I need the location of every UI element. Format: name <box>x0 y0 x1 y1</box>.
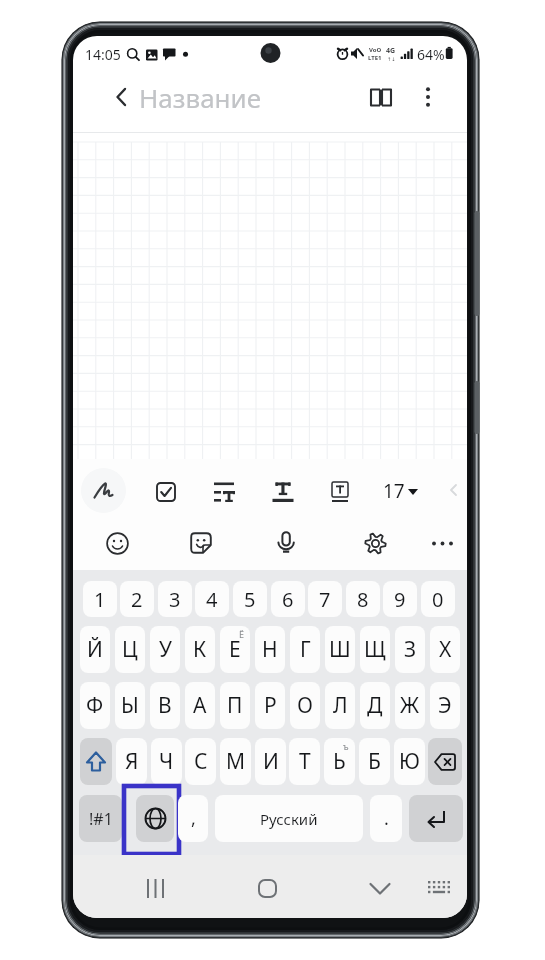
staticText: Название <box>139 80 262 115</box>
button[interactable]: Ю <box>394 738 425 785</box>
button[interactable]: Ь <box>324 738 355 785</box>
button[interactable]: Р <box>255 682 285 729</box>
button[interactable]: Reading mode <box>361 77 401 117</box>
button[interactable]: П <box>220 682 250 729</box>
button[interactable]: Paragraph style <box>203 471 245 513</box>
button[interactable]: Home <box>247 868 287 908</box>
button[interactable]: 0 <box>421 581 455 617</box>
staticText: В <box>158 691 172 720</box>
button[interactable]: Emoji <box>97 523 137 563</box>
button[interactable]: Previous <box>441 477 467 503</box>
button[interactable]: Русский <box>215 795 363 842</box>
button[interactable]: Settings <box>355 523 395 563</box>
button[interactable]: С <box>185 738 216 785</box>
button[interactable]: О <box>290 682 320 729</box>
button[interactable]: Back <box>102 77 142 117</box>
button[interactable]: Х <box>430 626 460 673</box>
button[interactable]: 7 <box>308 581 342 617</box>
button[interactable]: Г <box>290 626 320 673</box>
button[interactable]: З <box>395 626 425 673</box>
staticText: LTE1 <box>368 54 382 62</box>
staticText: 7 <box>319 586 331 613</box>
button[interactable]: И <box>255 738 286 785</box>
button[interactable]: 4 <box>195 581 229 617</box>
button[interactable]: Text box <box>319 471 361 513</box>
staticText: О <box>297 691 313 720</box>
staticText: 4G <box>386 46 396 56</box>
button[interactable]: Д <box>360 682 390 729</box>
staticText: Г <box>300 635 311 664</box>
button[interactable]: Ф <box>80 682 110 729</box>
staticText: , <box>191 806 196 831</box>
button[interactable]: К <box>185 626 215 673</box>
button[interactable]: Switch keyboard <box>419 868 459 908</box>
staticText: С <box>194 747 208 776</box>
staticText: 14:05 <box>85 45 121 64</box>
staticText: Ч <box>159 747 174 776</box>
button[interactable]: А <box>185 682 215 729</box>
button[interactable]: Enter <box>409 795 463 842</box>
staticText: ↑↓ <box>387 56 396 62</box>
button[interactable]: Recents <box>135 868 175 908</box>
staticText: 5 <box>244 586 256 613</box>
staticText: И <box>263 747 279 776</box>
staticText: Ж <box>400 691 420 720</box>
button[interactable]: Checklist <box>145 471 187 513</box>
button[interactable]: 1 <box>83 581 117 617</box>
button[interactable]: Ы <box>115 682 145 729</box>
staticText: !#1 <box>89 808 113 830</box>
staticText: К <box>193 635 207 664</box>
button[interactable]: Backspace <box>428 738 462 785</box>
button[interactable]: Е <box>220 626 250 673</box>
button[interactable]: М <box>220 738 251 785</box>
button[interactable]: Я <box>116 738 147 785</box>
button[interactable]: More <box>422 523 462 563</box>
button[interactable]: 6 <box>271 581 305 617</box>
staticText: Ф <box>86 691 104 720</box>
button[interactable]: Change language <box>136 795 174 842</box>
button[interactable]: У <box>150 626 180 673</box>
button[interactable]: Ц <box>115 626 145 673</box>
staticText: Д <box>367 691 383 720</box>
staticText: Е <box>229 635 241 664</box>
button[interactable]: Text style <box>262 471 304 513</box>
button[interactable]: Э <box>430 682 460 729</box>
button[interactable]: More options <box>408 77 448 117</box>
staticText: З <box>404 635 417 664</box>
button[interactable]: Stickers <box>181 523 221 563</box>
staticText: ъ <box>343 740 349 752</box>
staticText: Б <box>368 747 381 776</box>
button[interactable]: Ч <box>151 738 182 785</box>
button[interactable]: Ж <box>395 682 425 729</box>
button[interactable]: 5 <box>233 581 267 617</box>
staticText: 6 <box>282 586 294 613</box>
button[interactable]: . <box>370 795 402 842</box>
button[interactable]: Л <box>325 682 355 729</box>
staticText: 17 <box>383 478 405 504</box>
staticText: Я <box>125 747 139 776</box>
button[interactable]: Hide keyboard <box>360 868 400 908</box>
button[interactable]: Voice input <box>266 523 306 563</box>
button[interactable]: Symbols <box>79 795 122 842</box>
staticText: 9 <box>394 586 406 613</box>
button[interactable]: 2 <box>120 581 154 617</box>
staticText: М <box>226 747 246 776</box>
staticText: Ш <box>329 635 351 664</box>
staticText: Э <box>438 691 452 720</box>
button[interactable]: Т <box>289 738 320 785</box>
button[interactable]: Щ <box>360 626 390 673</box>
staticText: Р <box>264 691 277 720</box>
button[interactable]: Б <box>359 738 390 785</box>
button[interactable]: 9 <box>383 581 417 617</box>
button[interactable]: Й <box>80 626 110 673</box>
button[interactable]: 3 <box>158 581 192 617</box>
staticText: 8 <box>357 586 369 613</box>
button[interactable]: Handwriting <box>81 468 126 513</box>
button[interactable]: 17 <box>383 478 418 504</box>
button[interactable]: Н <box>255 626 285 673</box>
button[interactable]: , <box>178 795 208 842</box>
button[interactable]: Ш <box>325 626 355 673</box>
button[interactable]: 8 <box>346 581 380 617</box>
button[interactable]: В <box>150 682 180 729</box>
button[interactable]: Shift <box>80 738 112 785</box>
